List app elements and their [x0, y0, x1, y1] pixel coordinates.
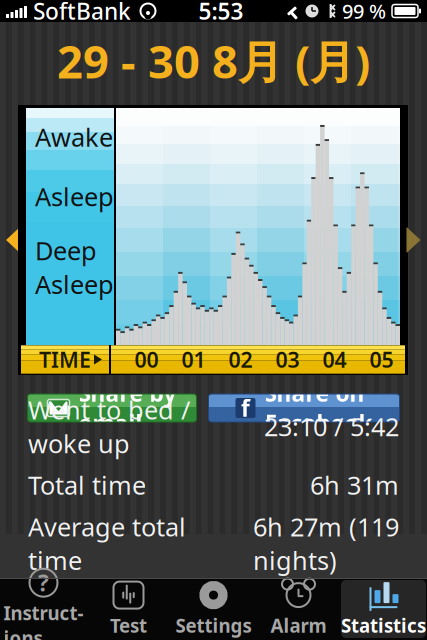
staticText: 02: [228, 345, 252, 374]
button[interactable]: Test: [86, 580, 171, 638]
staticText: Settings: [175, 613, 251, 638]
staticText: Awake: [35, 120, 113, 154]
staticText: Share by email: [78, 378, 176, 438]
button[interactable]: ?: [1, 580, 86, 638]
staticText: 6h 31m: [310, 468, 399, 502]
button[interactable]: Settings: [171, 580, 256, 638]
staticText: 23:10 / 5:42: [264, 410, 399, 443]
staticText: Statistics: [341, 613, 426, 638]
button[interactable]: f: [208, 394, 399, 422]
staticText: Went to bed / woke up: [28, 393, 190, 460]
button[interactable]: Statistics: [341, 580, 426, 638]
staticText: Instructions: [3, 601, 83, 640]
staticText: Total time: [28, 468, 146, 502]
staticText: 99 %: [342, 0, 386, 24]
staticText: Asleep: [35, 267, 114, 301]
staticText: 05: [369, 345, 393, 374]
button[interactable]: Previous night: [0, 210, 26, 270]
button[interactable]: Alarm: [256, 580, 341, 638]
button[interactable]: Next night: [400, 210, 427, 270]
staticText: 04: [322, 345, 346, 374]
staticText: Share on Facebook: [264, 378, 372, 438]
staticText: SoftBank: [33, 0, 131, 26]
staticText: 00: [134, 345, 158, 374]
button[interactable]: Share by email: [27, 394, 196, 422]
staticText: Average total time: [28, 510, 186, 577]
staticText: 29 - 30 8月 (月): [57, 31, 370, 91]
staticText: f: [241, 393, 250, 423]
staticText: Test: [110, 613, 147, 638]
staticText: 01: [181, 345, 205, 374]
staticText: TIME: [39, 345, 91, 374]
staticText: Deep: [35, 234, 97, 267]
staticText: 6h 27m (119 nights): [253, 510, 399, 577]
staticText: 5:53: [198, 0, 243, 26]
staticText: ?: [38, 568, 49, 598]
staticText: Asleep: [35, 180, 114, 213]
staticText: Alarm: [270, 613, 326, 638]
staticText: 03: [275, 345, 299, 374]
